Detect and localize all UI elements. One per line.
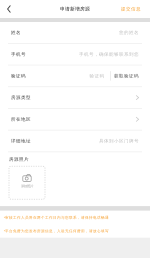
staticText: 申请新增房源 — [60, 6, 90, 12]
staticText: 房源照片 — [9, 156, 29, 162]
staticText: 手机号，确保能够联系到您 — [79, 51, 139, 57]
button[interactable]: 获取验证码 — [114, 73, 139, 79]
staticText: 具体到小区门牌号 — [99, 138, 139, 144]
staticText: 详细地址 — [11, 138, 31, 144]
staticText: 获取验证码 — [114, 73, 139, 79]
button[interactable]: 添加照片 — [9, 166, 45, 199]
staticText: •审核工作人员将在两个工作日内与您联系，请保持电话畅通 — [4, 215, 109, 220]
button[interactable]: 返回 — [0, 0, 18, 18]
staticText: 添加照片 — [21, 184, 33, 188]
staticText: 验证码 — [11, 73, 26, 79]
staticText: 验证码 — [89, 73, 104, 79]
staticText: 提交信息 — [121, 6, 141, 12]
staticText: •平台免费为您发布房源信息，入驻无任何费用，请放心填写 — [4, 228, 109, 233]
staticText: 房源类型 — [11, 95, 31, 100]
staticText: 手机号 — [11, 51, 26, 57]
button[interactable]: 所在地区 — [0, 109, 150, 130]
button[interactable]: 提交信息 — [117, 0, 150, 18]
staticText: 姓名 — [11, 30, 21, 35]
button[interactable]: 房源类型 — [0, 87, 150, 108]
staticText: 您的姓名 — [119, 30, 139, 35]
staticText: 所在地区 — [11, 116, 31, 122]
